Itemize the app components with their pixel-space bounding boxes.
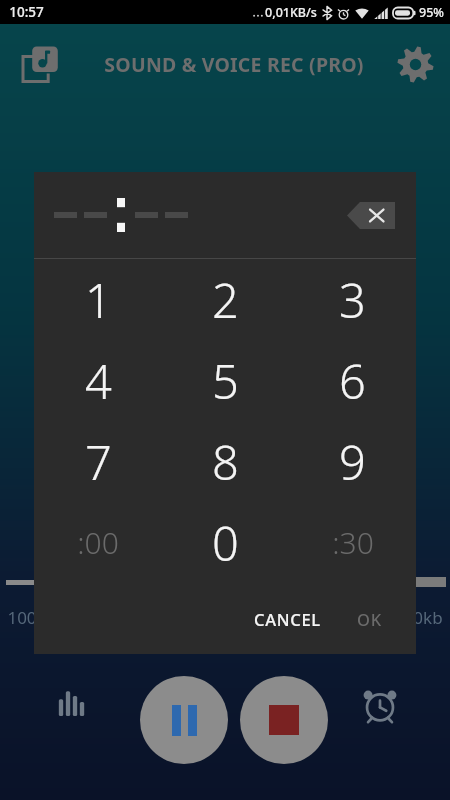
button[interactable]: 0 <box>162 502 289 583</box>
staticText: CANCEL <box>254 608 321 630</box>
staticText: 2 <box>212 268 239 332</box>
staticText: 0kb <box>413 606 443 629</box>
button[interactable]: Settings <box>390 39 440 89</box>
button[interactable]: 8 <box>162 421 289 502</box>
staticText: 10:57 <box>9 3 44 21</box>
staticText: 5 <box>212 349 239 413</box>
button[interactable]: 1 <box>34 259 162 340</box>
button[interactable]: OK <box>343 594 396 644</box>
button[interactable]: 6 <box>289 340 416 421</box>
button[interactable]: Pause <box>140 676 228 764</box>
staticText: 0 <box>212 511 239 575</box>
staticText: 100 <box>7 606 37 629</box>
button[interactable]: Stop <box>240 676 328 764</box>
button[interactable]: 9 <box>289 421 416 502</box>
staticText: 7 <box>85 430 112 494</box>
staticText: :00 <box>77 522 119 563</box>
staticText: 9 <box>339 430 366 494</box>
staticText: 0,01KB/s <box>265 4 317 21</box>
staticText: OK <box>357 608 382 630</box>
button[interactable]: Backspace <box>342 194 400 236</box>
button[interactable]: Visualizer <box>48 678 96 726</box>
button[interactable]: 2 <box>162 259 289 340</box>
button[interactable]: 3 <box>289 259 416 340</box>
button[interactable]: Recordings <box>16 39 66 89</box>
staticText: 1 <box>85 268 112 332</box>
staticText: SOUND & VOICE REC (PRO) <box>78 51 390 78</box>
staticText: 6 <box>339 349 366 413</box>
button[interactable]: 4 <box>34 340 162 421</box>
button[interactable]: :30 <box>289 502 416 583</box>
staticText: 95% <box>419 4 444 21</box>
button[interactable]: 7 <box>34 421 162 502</box>
button[interactable]: Set timer <box>352 676 408 732</box>
button[interactable]: 5 <box>162 340 289 421</box>
staticText: 4 <box>85 349 112 413</box>
staticText: 3 <box>339 268 366 332</box>
button[interactable]: CANCEL <box>240 594 335 644</box>
staticText: 8 <box>212 430 239 494</box>
button[interactable]: :00 <box>34 502 162 583</box>
staticText: :30 <box>332 522 374 563</box>
